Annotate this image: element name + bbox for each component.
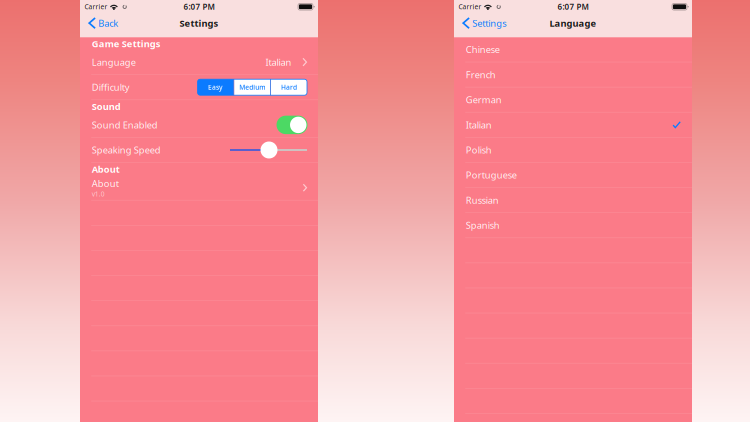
button[interactable]: French: [454, 62, 692, 87]
button[interactable]: Back: [80, 13, 170, 33]
staticText: Settings: [179, 17, 218, 29]
button[interactable]: Language: [80, 50, 318, 75]
staticText: Speaking Speed: [92, 144, 161, 156]
staticText: Settings: [472, 17, 506, 29]
staticText: Medium: [239, 83, 265, 92]
staticText: v1.0: [92, 189, 105, 198]
staticText: Hard: [281, 83, 297, 92]
staticText: Polish: [466, 144, 492, 156]
staticText: Carrier: [458, 2, 481, 11]
staticText: Italian: [265, 56, 291, 68]
staticText: Easy: [208, 83, 223, 92]
staticText: About: [92, 177, 119, 189]
staticText: Game Settings: [92, 37, 161, 50]
staticText: Italian: [466, 119, 492, 131]
staticText: Chinese: [466, 43, 500, 56]
staticText: Portuguese: [466, 169, 517, 181]
button[interactable]: Speaking Speed: [230, 141, 307, 159]
button[interactable]: Italian: [454, 113, 692, 138]
button[interactable]: Portuguese: [454, 163, 692, 188]
staticText: 6:07 PM: [183, 1, 214, 12]
staticText: Sound Enabled: [92, 119, 158, 131]
button[interactable]: About: [80, 175, 318, 201]
staticText: French: [466, 68, 496, 81]
staticText: 6:07 PM: [557, 1, 588, 12]
staticText: Language: [92, 56, 136, 68]
button[interactable]: Russian: [454, 188, 692, 213]
staticText: Difficulty: [92, 81, 130, 93]
button[interactable]: Spanish: [454, 213, 692, 238]
staticText: Language: [549, 17, 596, 29]
staticText: German: [466, 93, 502, 106]
button[interactable]: Polish: [454, 138, 692, 163]
button[interactable]: Easy: [198, 79, 307, 95]
staticText: Carrier: [84, 2, 107, 11]
button[interactable]: Chinese: [454, 37, 692, 62]
staticText: Spanish: [466, 219, 500, 231]
button[interactable]: Sound Enabled: [277, 116, 307, 134]
button[interactable]: German: [454, 87, 692, 113]
staticText: Russian: [466, 194, 499, 206]
staticText: About: [92, 163, 120, 175]
button[interactable]: Settings: [454, 13, 544, 33]
staticText: Back: [98, 17, 118, 29]
staticText: Sound: [92, 100, 121, 113]
